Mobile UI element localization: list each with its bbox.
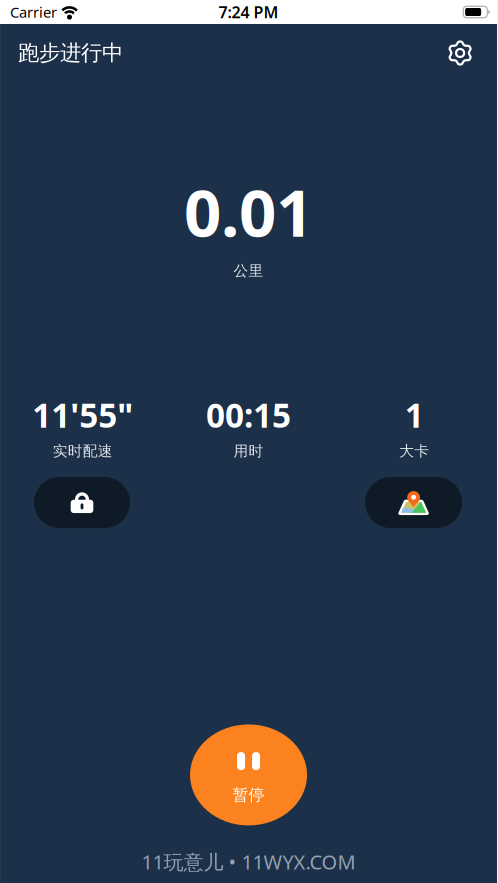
button[interactable]: Settings [440, 33, 480, 73]
button[interactable]: Lock screen [34, 477, 130, 528]
staticText: 0.01 [184, 168, 313, 255]
button[interactable]: 暂停 [190, 724, 307, 825]
staticText: 1 [405, 393, 424, 437]
staticText: 公里 [233, 262, 263, 280]
staticText: 实时配速 [53, 442, 113, 460]
staticText: 大卡 [399, 442, 429, 460]
staticText: Carrier [10, 2, 57, 22]
staticText: 用时 [233, 442, 263, 460]
staticText: 跑步进行中 [18, 40, 123, 66]
button[interactable]: Map [365, 477, 462, 528]
staticText: 00:15 [206, 393, 291, 437]
staticText: 7:24 PM [218, 1, 278, 23]
staticText: 11玩意儿 • 11WYX.COM [141, 848, 355, 875]
staticText: 11'55" [32, 393, 133, 437]
staticText: 暂停 [232, 785, 264, 805]
